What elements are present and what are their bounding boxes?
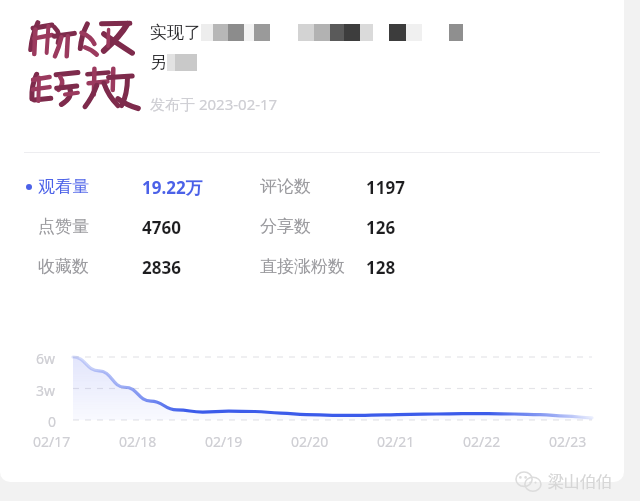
staticText: 观看量 [38, 176, 89, 197]
staticText: 分享数 [260, 216, 311, 237]
staticText: 另 [150, 52, 167, 73]
staticText: 19.22万 [142, 176, 203, 199]
staticText: 1197 [366, 176, 405, 199]
button[interactable]: 收藏数 [0, 256, 624, 290]
staticText: 发布于 2023-02-17 [150, 94, 278, 114]
staticText: 3w [36, 381, 56, 400]
staticText: 2836 [142, 256, 181, 279]
staticText: 02/20 [291, 432, 329, 451]
staticText: 收藏数 [38, 256, 89, 277]
staticText: 实现了 [150, 22, 201, 43]
staticText: 4760 [142, 216, 181, 239]
staticText: 02/17 [33, 432, 71, 451]
staticText: 02/23 [549, 432, 587, 451]
staticText: 02/18 [119, 432, 157, 451]
staticText: 点赞量 [38, 216, 89, 237]
staticText: 评论数 [260, 176, 311, 197]
staticText: 0 [48, 412, 57, 431]
staticText: 02/21 [377, 432, 415, 451]
staticText: 02/22 [463, 432, 501, 451]
staticText: 梁山伯伯 [548, 472, 612, 492]
staticText: 128 [366, 256, 396, 279]
button[interactable]: 观看量 [0, 176, 624, 210]
staticText: 126 [366, 216, 396, 239]
other: 阶级跨越 logo [26, 16, 144, 128]
staticText: 6w [36, 349, 56, 368]
staticText: 直接涨粉数 [260, 256, 345, 277]
staticText: 02/19 [205, 432, 243, 451]
button[interactable]: 点赞量 [0, 216, 624, 250]
button[interactable]: WeChat 梁山伯伯 [516, 472, 612, 492]
